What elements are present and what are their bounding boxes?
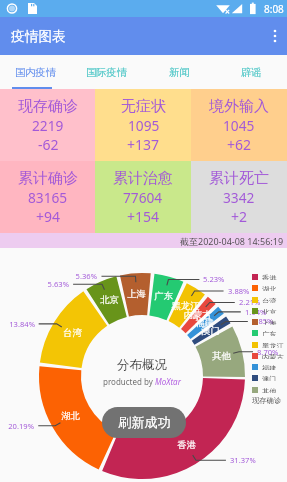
button[interactable]: 累计治愈 [95,161,191,233]
button[interactable]: 现存确诊 [0,89,95,161]
staticText: producted by [103,376,155,387]
staticText: 香港 [262,274,277,280]
staticText: +137 [127,135,160,154]
button[interactable]: 境外输入 [191,89,287,161]
staticText: 北京 [262,308,277,314]
button[interactable]: 累计确诊 [0,161,95,233]
staticText: 31.37% [230,455,266,465]
staticText: 1095 [128,116,160,135]
staticText: +2 [231,207,248,226]
staticText: +62 [227,135,252,154]
staticText: +94 [36,207,61,226]
staticText: 上海 [125,288,148,300]
staticText: 新闻 [169,66,190,79]
staticText: 2.21% [239,297,275,307]
staticText: 现存确诊 [18,97,78,116]
staticText: MoXtar [155,376,181,387]
staticText: 20.19% [0,421,34,431]
staticText: 内蒙古 [262,353,284,359]
staticText: 黑龙江 [262,342,284,348]
button[interactable]: 辟谣 [215,55,287,89]
staticText: 3342 [223,188,255,207]
staticText: 3.88% [228,286,264,296]
staticText: 2219 [32,116,64,135]
staticText: 广东 [152,290,175,302]
staticText: +154 [127,207,160,226]
staticText: 黑龙江 [169,300,202,312]
button[interactable]: 刷新成功 [102,407,186,438]
staticText: 分布概况 [117,357,167,373]
staticText: 台湾 [262,297,277,303]
staticText: 83165 [28,188,68,207]
staticText: 截至2020-04-08 14:56:19 [180,235,284,247]
staticText: 现存确诊 [252,396,282,405]
staticText: 5.36% [61,271,97,281]
button[interactable]: 累计死亡 [191,161,287,233]
staticText: 上海 [262,319,277,325]
staticText: 无症状 [121,97,166,116]
staticText: 1045 [223,116,255,135]
button[interactable]: 新闻 [143,55,215,89]
staticText: 澳门 [199,325,222,337]
staticText: 其他 [262,387,277,393]
staticText: 台湾 [61,327,84,339]
staticText: 其他 [210,350,233,362]
staticText: 累计死亡 [209,169,269,188]
staticText: 1.85% [252,316,287,326]
staticText: 累计确诊 [18,169,78,188]
staticText: 内蒙古 [181,309,214,321]
staticText: 湖北 [262,285,277,291]
staticText: 累计治愈 [113,169,173,188]
staticText: 福建 [262,364,277,370]
staticText: 澳门 [262,375,277,381]
staticText: 湖北 [59,410,82,422]
button[interactable]: 国际疫情 [71,55,143,89]
staticText: 境外输入 [209,97,269,116]
staticText: 福建 [193,317,216,329]
button[interactable]: 无症状 [95,89,191,161]
staticText: -62 [38,135,59,154]
staticText: 国内疫情 [15,66,57,79]
button[interactable]: More options [257,17,287,55]
staticText: 刷新成功 [118,414,171,431]
staticText: 5.63% [33,279,69,289]
staticText: 5.23% [203,274,239,284]
staticText: 8.70% [257,347,287,357]
staticText: 8:08 [264,2,284,16]
staticText: 国际疫情 [86,66,128,79]
staticText: 77604 [123,188,163,207]
staticText: 广东 [262,330,277,336]
staticText: 香港 [175,439,198,451]
staticText: 13.84% [0,319,35,329]
staticText: 辟谣 [241,66,262,79]
staticText: 1.94% [245,307,281,317]
staticText: 疫情图表 [11,28,66,45]
button[interactable]: 国内疫情 [0,55,71,89]
staticText: 北京 [98,294,121,306]
